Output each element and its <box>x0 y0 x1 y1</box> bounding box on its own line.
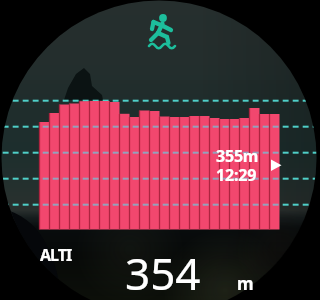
button[interactable]: Altimeter graph <box>0 0 320 300</box>
